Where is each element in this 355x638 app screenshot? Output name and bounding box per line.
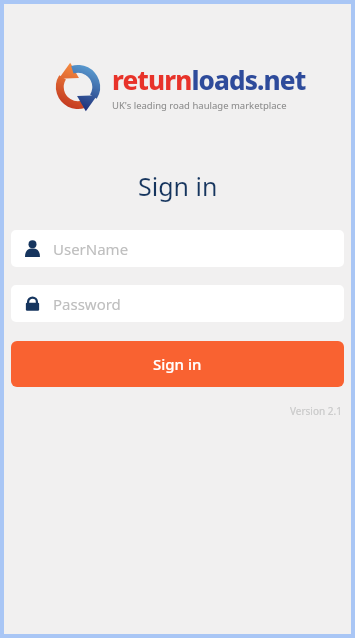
other: Password [24, 295, 41, 312]
staticText: UserName [53, 239, 129, 259]
staticText: Sign in [153, 354, 202, 374]
button[interactable]: Password [11, 285, 344, 322]
staticText: Password [53, 294, 121, 314]
button[interactable]: User name [11, 230, 344, 267]
other: User name [24, 240, 41, 257]
staticText: Sign in [138, 169, 218, 203]
staticText: returnloads.net [112, 62, 306, 97]
button[interactable]: Sign in [11, 341, 344, 387]
staticText: Version 2.1 [290, 404, 342, 418]
staticText: UK's leading road haulage marketplace [112, 99, 287, 112]
